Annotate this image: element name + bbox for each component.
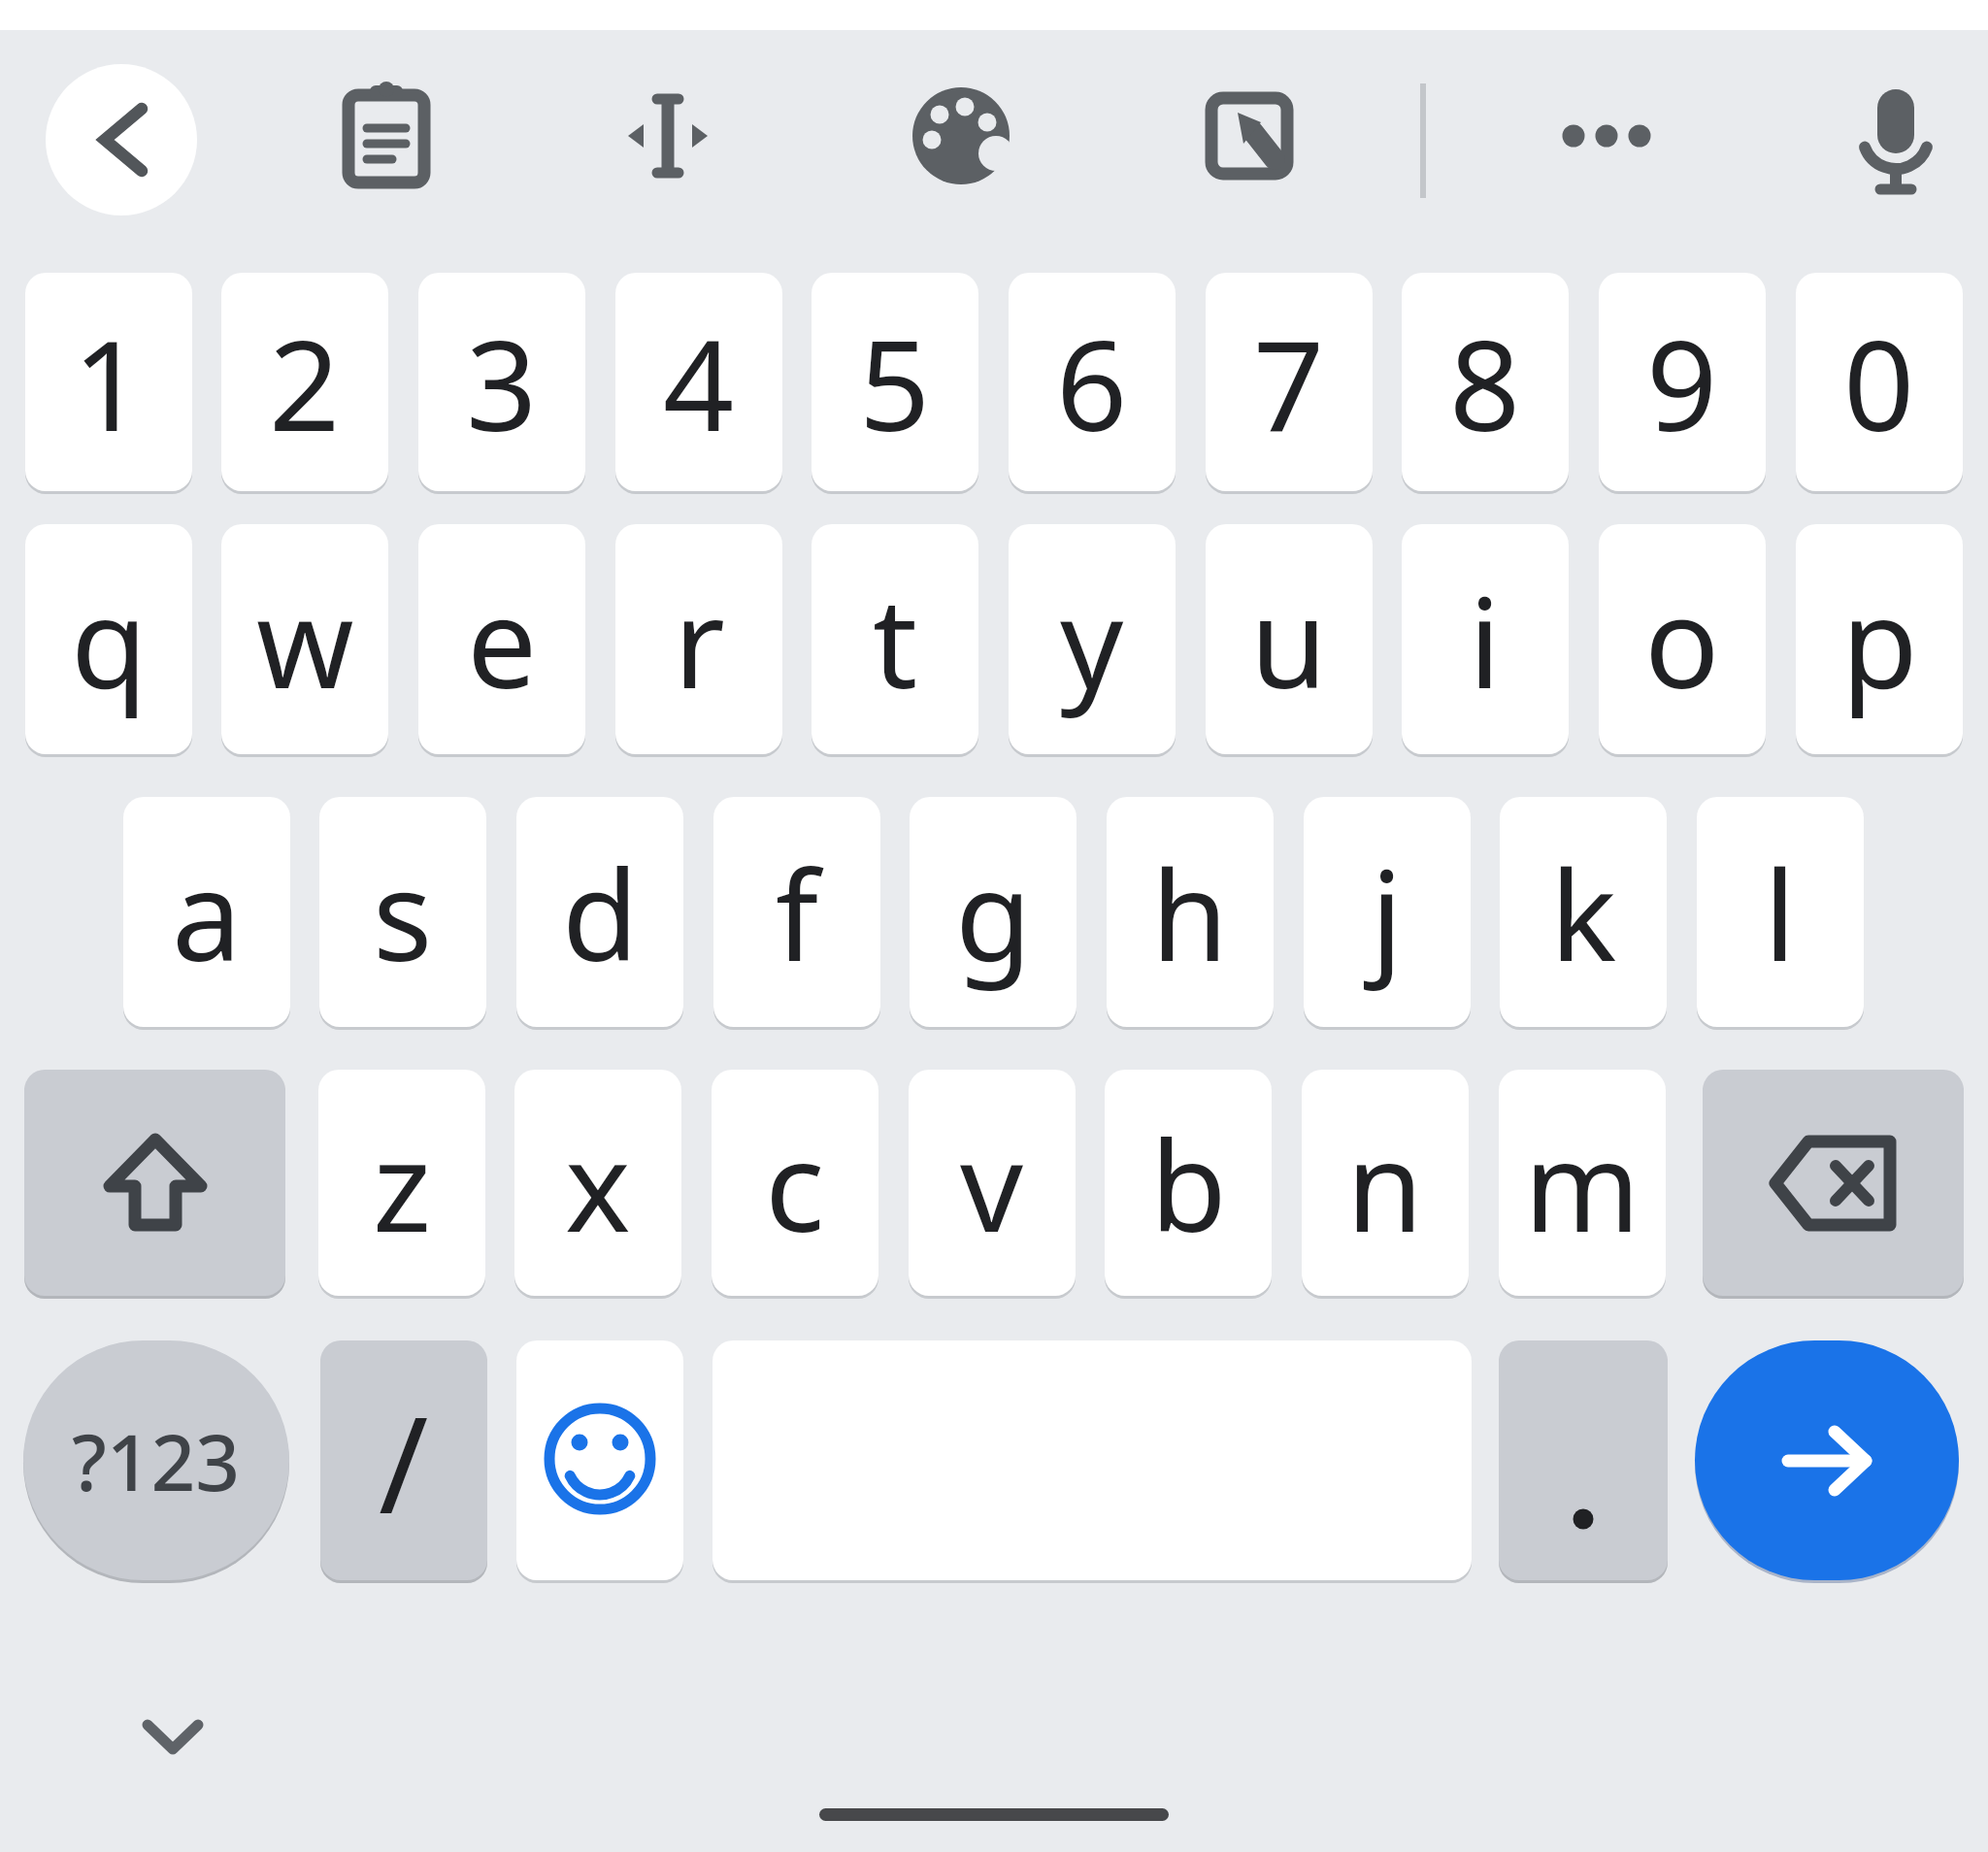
staticText: b: [1150, 1099, 1227, 1268]
button[interactable]: [911, 85, 1011, 186]
staticText: c: [765, 1099, 825, 1268]
button[interactable]: [1850, 76, 1941, 206]
staticText: 2: [269, 298, 341, 467]
button[interactable]: [819, 1808, 1169, 1821]
button[interactable]: o: [1599, 524, 1766, 754]
button[interactable]: [24, 1070, 285, 1296]
staticText: d: [562, 828, 639, 997]
button[interactable]: j: [1304, 797, 1471, 1027]
button[interactable]: 2: [221, 273, 388, 491]
staticText: r: [674, 555, 725, 724]
staticText: ?123: [72, 1407, 241, 1513]
button[interactable]: d: [516, 797, 683, 1027]
staticText: f: [776, 828, 819, 997]
button[interactable]: p: [1796, 524, 1963, 754]
button[interactable]: z: [318, 1070, 485, 1296]
button[interactable]: g: [910, 797, 1077, 1027]
button[interactable]: [516, 1340, 683, 1580]
staticText: 3: [466, 298, 538, 467]
button[interactable]: t: [812, 524, 978, 754]
staticText: 4: [663, 298, 735, 467]
button[interactable]: r: [615, 524, 782, 754]
staticText: u: [1250, 555, 1328, 724]
button[interactable]: 4: [615, 273, 782, 491]
button[interactable]: i: [1402, 524, 1569, 754]
staticText: 5: [859, 298, 931, 467]
button[interactable]: [46, 64, 197, 215]
staticText: e: [467, 555, 538, 724]
button[interactable]: [1557, 120, 1656, 151]
staticText: 8: [1449, 298, 1521, 467]
button[interactable]: 6: [1009, 273, 1176, 491]
staticText: n: [1346, 1099, 1424, 1268]
button[interactable]: v: [909, 1070, 1076, 1296]
staticText: w: [256, 555, 354, 724]
staticText: 1: [73, 298, 145, 467]
staticText: k: [1550, 828, 1617, 997]
button[interactable]: q: [25, 524, 192, 754]
button[interactable]: h: [1107, 797, 1274, 1027]
button[interactable]: 7: [1206, 273, 1373, 491]
button[interactable]: 3: [418, 273, 585, 491]
button[interactable]: [1703, 1070, 1964, 1296]
button[interactable]: 0: [1796, 273, 1963, 491]
button[interactable]: m: [1499, 1070, 1666, 1296]
button[interactable]: [1205, 91, 1294, 181]
staticText: 0: [1843, 298, 1915, 467]
button[interactable]: k: [1500, 797, 1667, 1027]
button[interactable]: e: [418, 524, 585, 754]
staticText: 9: [1646, 298, 1718, 467]
staticText: h: [1151, 828, 1229, 997]
staticText: z: [373, 1099, 432, 1268]
button[interactable]: b: [1105, 1070, 1272, 1296]
button[interactable]: 5: [812, 273, 978, 491]
button[interactable]: w: [221, 524, 388, 754]
button[interactable]: c: [712, 1070, 878, 1296]
button[interactable]: ?123: [23, 1340, 289, 1580]
button[interactable]: [1499, 1340, 1668, 1580]
staticText: 7: [1253, 298, 1325, 467]
staticText: q: [71, 555, 148, 724]
staticText: o: [1644, 555, 1720, 724]
staticText: 6: [1056, 298, 1128, 467]
button[interactable]: n: [1302, 1070, 1469, 1296]
button[interactable]: f: [713, 797, 880, 1027]
staticText: v: [960, 1099, 1024, 1268]
staticText: l: [1764, 828, 1797, 997]
button[interactable]: [614, 89, 721, 182]
button[interactable]: s: [319, 797, 486, 1027]
button[interactable]: a: [123, 797, 290, 1027]
staticText: a: [172, 828, 242, 997]
staticText: s: [373, 828, 433, 997]
button[interactable]: [338, 83, 435, 188]
button[interactable]: [1695, 1340, 1959, 1580]
staticText: t: [873, 555, 918, 724]
button[interactable]: /: [320, 1340, 487, 1580]
staticText: m: [1524, 1099, 1640, 1268]
staticText: j: [1371, 828, 1404, 997]
button[interactable]: u: [1206, 524, 1373, 754]
staticText: g: [955, 828, 1032, 997]
button[interactable]: y: [1009, 524, 1176, 754]
button[interactable]: x: [514, 1070, 681, 1296]
button[interactable]: 8: [1402, 273, 1569, 491]
button[interactable]: 9: [1599, 273, 1766, 491]
button[interactable]: [136, 1701, 210, 1763]
button[interactable]: l: [1697, 797, 1864, 1027]
staticText: x: [565, 1099, 631, 1268]
staticText: /: [379, 1370, 429, 1552]
button[interactable]: 1: [25, 273, 192, 491]
staticText: i: [1469, 555, 1502, 724]
staticText: p: [1841, 555, 1918, 724]
staticText: y: [1060, 555, 1124, 724]
